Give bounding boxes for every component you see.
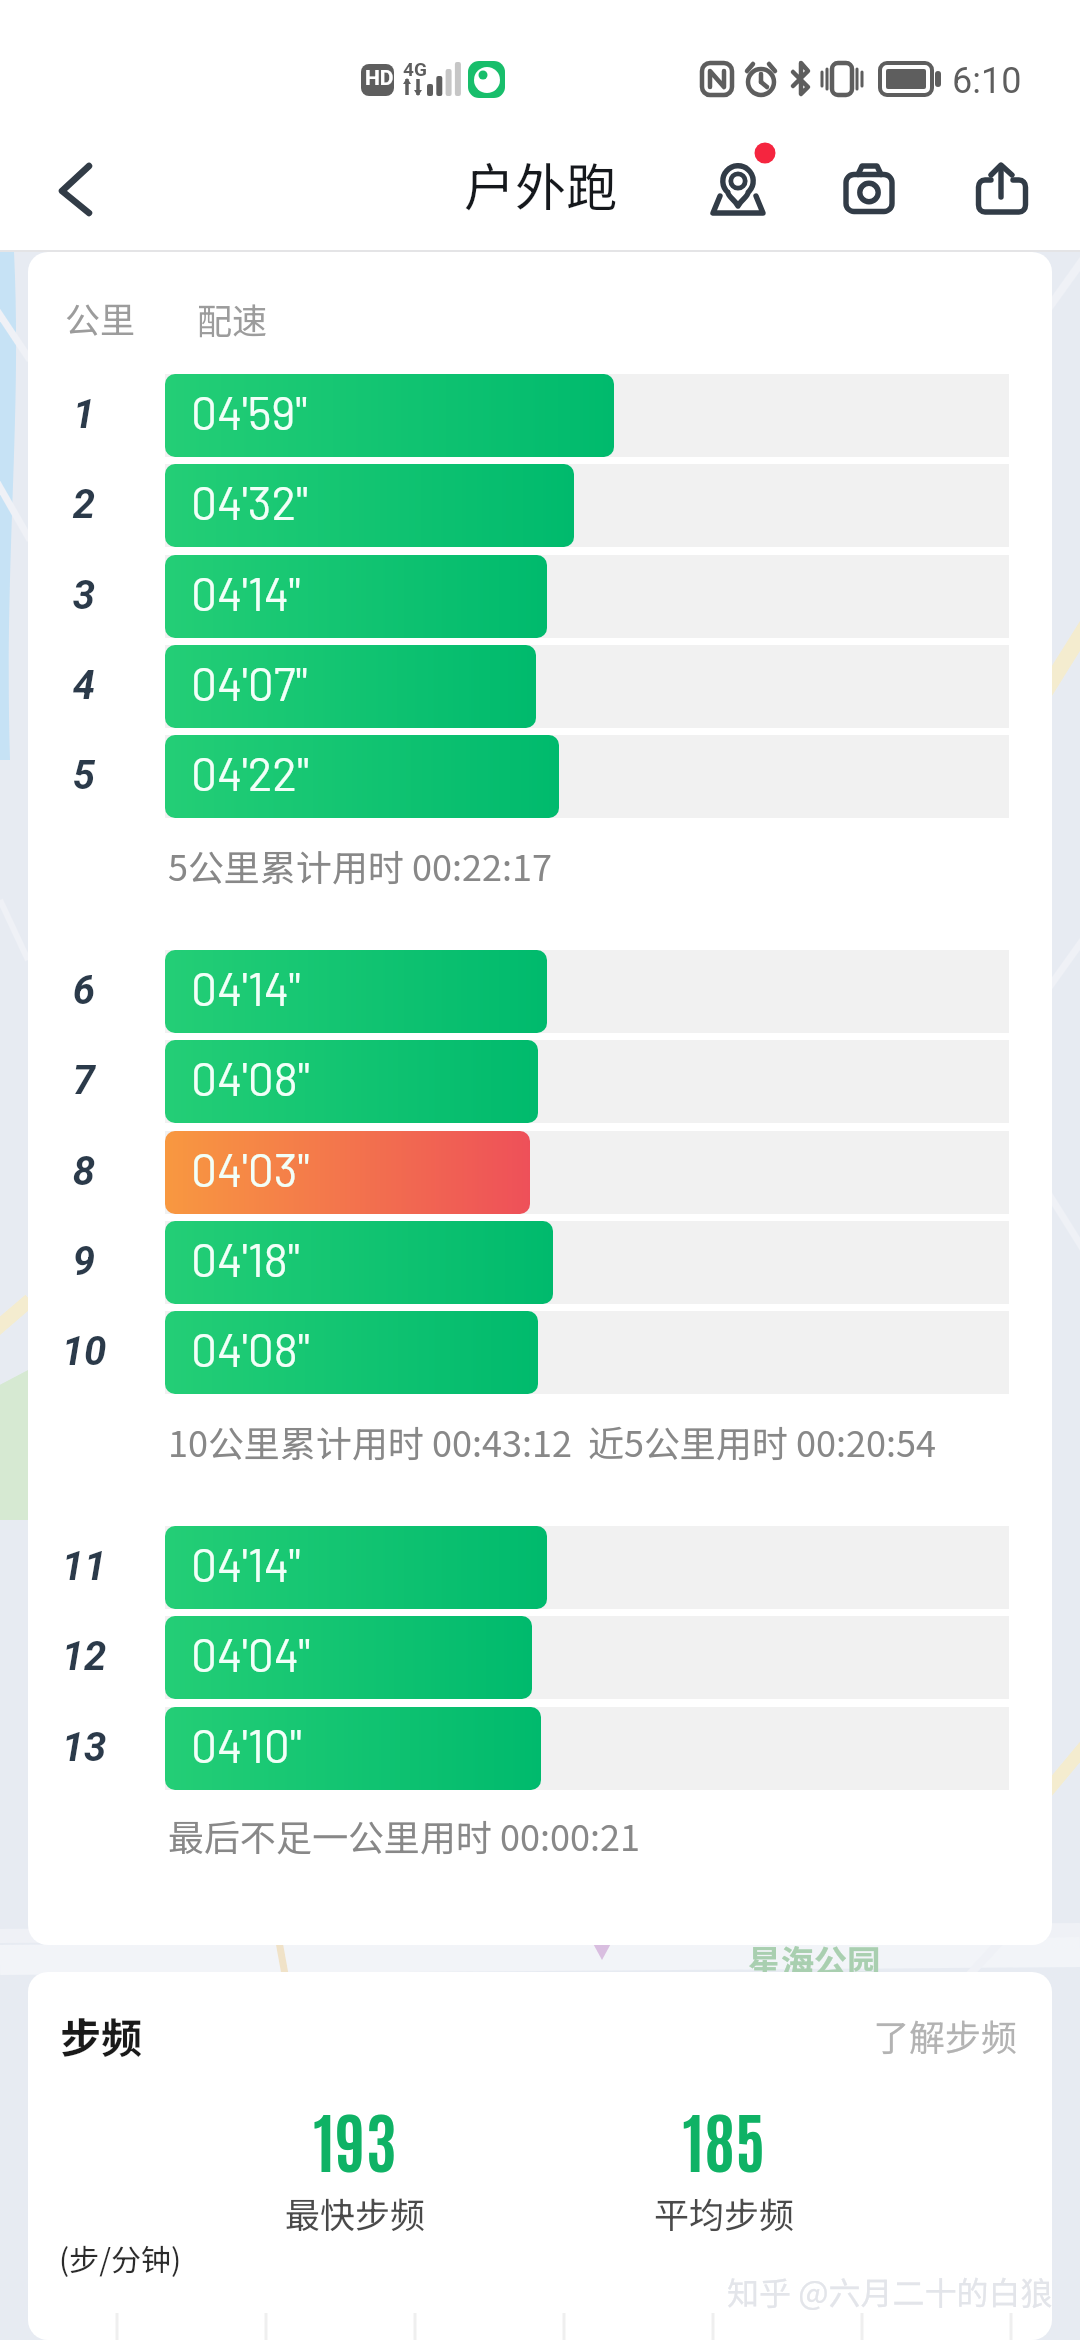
button[interactable]: 7 xyxy=(28,1040,1052,1123)
staticText: (步/分钟) xyxy=(59,2236,182,2279)
button[interactable]: Share xyxy=(952,138,1052,252)
button[interactable]: 1 xyxy=(28,374,1052,457)
button[interactable]: 185 xyxy=(584,2096,864,2246)
staticText: 平均步频 xyxy=(584,2187,864,2238)
staticText: 04'32" xyxy=(191,474,309,529)
staticText: 配速 xyxy=(197,293,268,344)
staticText: 9 xyxy=(28,1238,140,1285)
staticText: 04'08" xyxy=(191,1321,310,1376)
staticText: 04'04" xyxy=(191,1626,311,1681)
button[interactable]: 3 xyxy=(28,555,1052,638)
staticText: 04'14" xyxy=(191,565,301,620)
staticText: 户外跑 xyxy=(464,147,618,221)
staticText: 04'03" xyxy=(191,1141,310,1196)
staticText: 193 xyxy=(215,2096,495,2181)
staticText: 10公里累计用时 00:43:12 近5公里用时 00:20:54 xyxy=(168,1415,936,1467)
staticText: HD xyxy=(365,66,394,91)
button[interactable]: Back xyxy=(0,138,116,252)
button[interactable]: 2 xyxy=(28,464,1052,547)
button[interactable]: 12 xyxy=(28,1616,1052,1699)
button[interactable]: 6 xyxy=(28,950,1052,1033)
staticText: 7 xyxy=(28,1057,140,1104)
staticText: 1 xyxy=(28,391,140,438)
staticText: 6 xyxy=(28,967,140,1014)
button[interactable]: 5 xyxy=(28,735,1052,818)
staticText: 5公里累计用时 00:22:17 xyxy=(168,839,552,891)
staticText: 2 xyxy=(28,481,140,528)
staticText: 8 xyxy=(28,1148,140,1195)
staticText: 5 xyxy=(28,752,140,799)
staticText: 04'22" xyxy=(191,745,310,800)
staticText: 最快步频 xyxy=(215,2187,495,2238)
staticText: 3 xyxy=(28,572,140,619)
staticText: 步频 xyxy=(60,2005,142,2064)
staticText: 最后不足一公里用时 00:00:21 xyxy=(168,1809,640,1861)
staticText: 星海公园 xyxy=(748,1936,880,1984)
staticText: 04'08" xyxy=(191,1050,310,1105)
button[interactable]: 了解步频 xyxy=(869,2005,1025,2057)
staticText: 10 xyxy=(28,1328,140,1375)
button[interactable]: 193 xyxy=(215,2096,495,2246)
button[interactable]: Route map xyxy=(688,138,788,252)
staticText: 04'10" xyxy=(191,1717,302,1772)
staticText: 04'59" xyxy=(191,384,308,439)
staticText: 知乎 @六月二十的白狼 xyxy=(727,2268,1053,2314)
staticText: 04'18" xyxy=(191,1231,300,1286)
staticText: 04'14" xyxy=(191,960,301,1015)
staticText: 13 xyxy=(28,1724,140,1771)
staticText: 了解步频 xyxy=(873,2009,1018,2061)
staticText: 12 xyxy=(28,1633,140,1680)
staticText: 11 xyxy=(28,1543,140,1590)
staticText: 4 xyxy=(28,662,140,709)
button[interactable]: 4 xyxy=(28,645,1052,728)
staticText: 4G xyxy=(403,58,427,80)
button[interactable]: 10 xyxy=(28,1311,1052,1394)
staticText: 04'07" xyxy=(191,655,308,710)
button[interactable]: 8 xyxy=(28,1131,1052,1214)
button[interactable]: 11 xyxy=(28,1526,1052,1609)
staticText: 6:10 xyxy=(952,60,1022,102)
staticText: 04'14" xyxy=(191,1536,301,1591)
staticText: 185 xyxy=(584,2096,864,2181)
button[interactable]: 9 xyxy=(28,1221,1052,1304)
button[interactable]: 13 xyxy=(28,1707,1052,1790)
staticText: 公里 xyxy=(65,292,136,343)
button[interactable]: Camera xyxy=(819,138,919,252)
